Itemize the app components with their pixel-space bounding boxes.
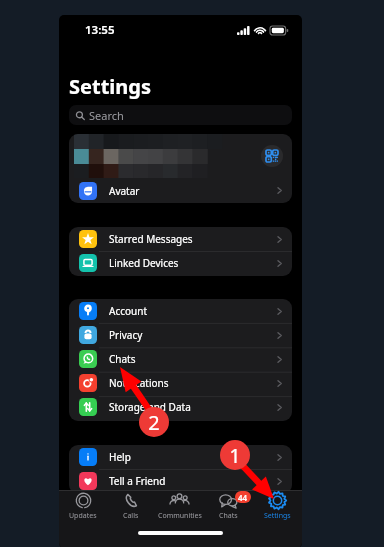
button[interactable]: Chats: [69, 347, 292, 371]
button[interactable]: Account: [69, 299, 292, 323]
button[interactable]: Settings: [253, 491, 302, 521]
staticText: Updates: [69, 511, 97, 521]
button[interactable]: Linked Devices: [69, 251, 292, 275]
staticText: Linked Devices: [109, 256, 179, 270]
staticText: 13:55: [85, 22, 115, 38]
staticText: Calls: [123, 511, 139, 521]
staticText: Tell a Friend: [109, 474, 166, 488]
button[interactable]: Tell a Friend: [69, 469, 292, 493]
staticText: 1: [229, 442, 241, 469]
staticText: Privacy: [109, 328, 143, 342]
staticText: Storage and Data: [109, 400, 191, 414]
staticText: Chats: [109, 352, 136, 366]
button[interactable]: 44: [204, 491, 253, 521]
staticText: Notifications: [109, 376, 169, 390]
button[interactable]: Communities: [155, 491, 204, 521]
staticText: Search: [89, 108, 124, 123]
button[interactable]: QR code: [69, 134, 292, 178]
staticText: Settings: [264, 511, 291, 521]
button[interactable]: Storage and Data: [69, 395, 292, 419]
staticText: Chats: [219, 511, 238, 521]
button[interactable]: Notifications: [69, 371, 292, 395]
button[interactable]: Avatar: [69, 178, 292, 203]
staticText: Starred Messages: [109, 232, 193, 246]
button[interactable]: Starred Messages: [69, 227, 292, 251]
staticText: 2: [148, 409, 160, 436]
button[interactable]: Search: [69, 105, 292, 125]
staticText: Avatar: [109, 184, 140, 198]
staticText: Settings: [69, 73, 151, 100]
button[interactable]: Calls: [107, 491, 155, 521]
staticText: Help: [109, 450, 131, 464]
button[interactable]: QR code: [261, 145, 283, 167]
button[interactable]: Privacy: [69, 323, 292, 347]
button[interactable]: Help: [69, 445, 292, 469]
staticText: Account: [109, 304, 148, 318]
staticText: Communities: [158, 511, 202, 521]
button[interactable]: Updates: [59, 491, 107, 521]
staticText: 44: [238, 492, 248, 503]
